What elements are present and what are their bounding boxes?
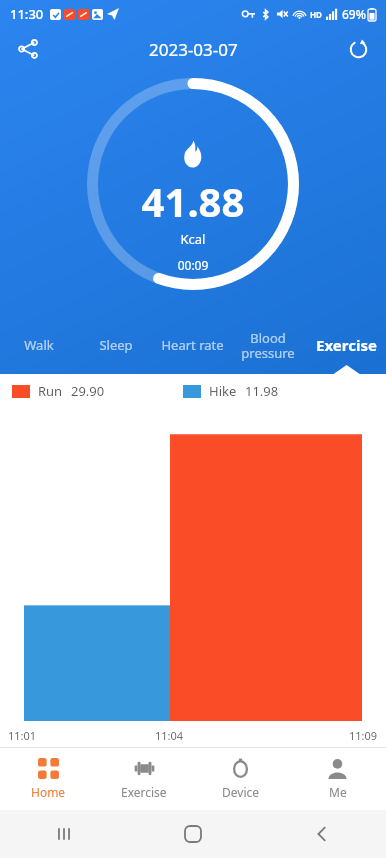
button[interactable]: Sleep — [77, 322, 154, 368]
staticText: 29.90 — [71, 382, 105, 400]
button[interactable]: Home — [0, 748, 96, 810]
staticText: 11:01 — [8, 728, 37, 743]
button[interactable]: Heart rate — [154, 322, 230, 368]
button[interactable]: Home — [128, 810, 257, 858]
button[interactable]: Share — [8, 29, 48, 69]
staticText: Heart rate — [161, 336, 224, 354]
staticText: Exercise — [121, 784, 167, 800]
staticText: 41.88 — [85, 174, 301, 228]
button[interactable]: Recents — [0, 810, 128, 858]
button[interactable]: Blood pressure — [230, 322, 306, 368]
button[interactable]: Back — [257, 810, 386, 858]
staticText: 2023-03-07 — [149, 38, 238, 61]
staticText: Blood pressure — [241, 329, 295, 362]
staticText: Run — [38, 382, 63, 400]
staticText: 11:09 — [349, 728, 378, 743]
button[interactable]: Refresh — [338, 29, 378, 69]
button[interactable]: Device — [192, 748, 289, 810]
staticText: Me — [329, 784, 347, 800]
button[interactable]: Walk — [0, 322, 77, 368]
staticText: Home — [31, 784, 66, 800]
staticText: Device — [222, 784, 260, 800]
staticText: Sleep — [99, 336, 133, 354]
button[interactable]: Exercise — [306, 322, 386, 368]
staticText: HD — [310, 9, 322, 20]
staticText: Exercise — [316, 335, 377, 355]
staticText: 11:04 — [155, 728, 184, 743]
button[interactable]: Exercise — [96, 748, 192, 810]
button[interactable]: Me — [289, 748, 386, 810]
staticText: 69% — [342, 6, 366, 22]
staticText: 11.98 — [245, 382, 279, 400]
staticText: Kcal — [85, 230, 301, 248]
staticText: 11:30 — [10, 5, 44, 23]
staticText: 00:09 — [85, 257, 301, 273]
staticText: Hike — [209, 382, 237, 400]
staticText: Walk — [24, 336, 54, 354]
